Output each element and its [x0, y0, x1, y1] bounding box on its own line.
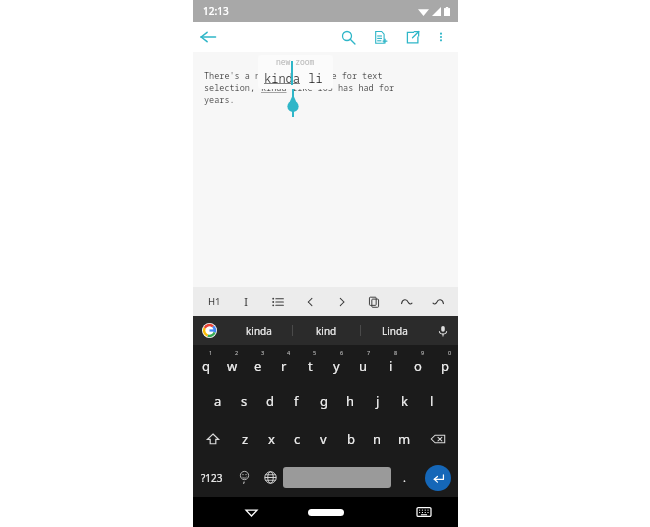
staticText: k: [401, 392, 408, 410]
staticText: u: [359, 357, 368, 375]
button[interactable]: f: [283, 382, 310, 420]
button[interactable]: z: [232, 420, 258, 458]
staticText: kinda: [264, 70, 301, 86]
button[interactable]: 3: [245, 345, 271, 382]
staticText: e: [254, 357, 262, 375]
button[interactable]: m: [391, 420, 418, 458]
staticText: z: [242, 430, 249, 448]
button[interactable]: k: [391, 382, 418, 420]
button[interactable]: 8: [377, 345, 404, 382]
staticText: like iOS has had for: [287, 82, 395, 94]
staticText: a: [214, 392, 222, 410]
staticText: w: [227, 357, 238, 375]
button[interactable]: kinda: [225, 316, 292, 345]
button[interactable]: Italic: [230, 287, 262, 316]
staticText: 1: [209, 349, 213, 356]
button[interactable]: x: [258, 420, 284, 458]
button[interactable]: Hide keyboard: [239, 500, 263, 524]
staticText: ?123: [201, 471, 223, 485]
staticText: p: [441, 357, 449, 375]
staticText: r: [281, 357, 287, 375]
staticText: c: [294, 430, 301, 448]
button[interactable]: Bullet list: [262, 287, 294, 316]
staticText: kinda: [246, 324, 272, 338]
button[interactable]: More options: [428, 24, 454, 50]
staticText: 5: [313, 349, 317, 356]
staticText: There's a new zoom feature for text: [204, 70, 383, 82]
staticText: d: [266, 392, 274, 410]
staticText: H1: [208, 295, 221, 308]
button[interactable]: 5: [297, 345, 323, 382]
button[interactable]: Change language: [257, 458, 283, 497]
button[interactable]: H1: [199, 287, 230, 316]
button[interactable]: g: [310, 382, 337, 420]
staticText: o: [414, 357, 422, 375]
staticText: b: [347, 430, 355, 448]
button[interactable]: n: [364, 420, 391, 458]
button[interactable]: Enter: [417, 458, 458, 497]
button[interactable]: .: [391, 458, 417, 497]
staticText: new zoom: [276, 56, 315, 67]
button[interactable]: kind: [293, 316, 360, 345]
staticText: 6: [340, 349, 344, 356]
button[interactable]: h: [337, 382, 364, 420]
staticText: s: [241, 392, 248, 410]
staticText: .: [403, 470, 406, 485]
button[interactable]: Home: [308, 509, 344, 516]
button[interactable]: Undo: [390, 287, 422, 316]
button[interactable]: Outdent: [294, 287, 326, 316]
button[interactable]: 7: [350, 345, 377, 382]
staticText: 8: [394, 349, 398, 356]
button[interactable]: b: [337, 420, 364, 458]
button[interactable]: Back: [193, 22, 223, 52]
button[interactable]: v: [310, 420, 337, 458]
staticText: ,: [243, 474, 246, 485]
staticText: selection,: [204, 82, 261, 94]
staticText: 7: [367, 349, 371, 356]
button[interactable]: 4: [271, 345, 297, 382]
staticText: Linda: [382, 324, 408, 338]
button[interactable]: Redo: [422, 287, 454, 316]
staticText: 0: [448, 349, 452, 356]
button[interactable]: Backspace: [418, 420, 458, 458]
button[interactable]: Search: [333, 22, 363, 52]
staticText: kind: [316, 324, 337, 338]
button[interactable]: l: [418, 382, 445, 420]
staticText: x: [268, 430, 275, 448]
staticText: v: [320, 430, 327, 448]
button[interactable]: 1: [193, 345, 219, 382]
staticText: I: [244, 294, 249, 309]
staticText: 9: [421, 349, 425, 356]
button[interactable]: Switch keyboard: [412, 500, 436, 524]
staticText: 12:13: [203, 4, 229, 18]
button[interactable]: 0: [431, 345, 458, 382]
button[interactable]: a: [205, 382, 231, 420]
button[interactable]: Share: [397, 22, 427, 52]
button[interactable]: Shift: [193, 420, 232, 458]
staticText: t: [308, 357, 313, 375]
button[interactable]: Google: [193, 316, 225, 345]
button[interactable]: 2: [219, 345, 245, 382]
button[interactable]: 9: [404, 345, 431, 382]
staticText: 2: [235, 349, 239, 356]
staticText: 3: [261, 349, 265, 356]
button[interactable]: Linda: [361, 316, 428, 345]
staticText: years.: [204, 94, 235, 106]
button[interactable]: ?123: [193, 458, 231, 497]
button[interactable]: s: [231, 382, 257, 420]
button[interactable]: Copy: [358, 287, 390, 316]
staticText: h: [346, 392, 355, 410]
staticText: q: [202, 357, 210, 375]
button[interactable]: j: [364, 382, 391, 420]
staticText: li: [301, 70, 323, 86]
button[interactable]: d: [257, 382, 283, 420]
button[interactable]: Space: [283, 467, 391, 488]
button[interactable]: c: [284, 420, 310, 458]
button[interactable]: Voice input: [428, 316, 458, 345]
staticText: g: [320, 392, 328, 410]
button[interactable]: Emoji and comma: [231, 458, 257, 497]
staticText: i: [389, 357, 393, 375]
button[interactable]: Indent: [326, 287, 358, 316]
button[interactable]: New note: [365, 22, 395, 52]
button[interactable]: 6: [323, 345, 350, 382]
